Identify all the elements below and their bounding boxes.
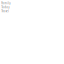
staticText: Travel <box>1 9 9 13</box>
staticText: Family <box>1 1 10 5</box>
staticText: Today <box>1 5 9 9</box>
